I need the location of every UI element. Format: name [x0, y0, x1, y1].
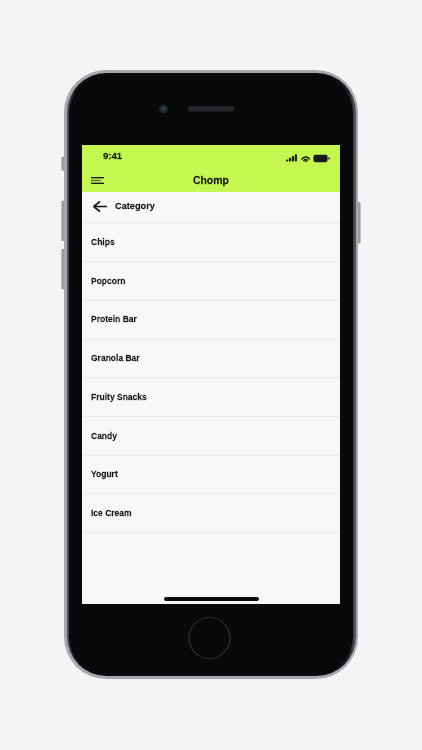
button[interactable]: Chips [82, 223, 340, 262]
staticText: Protein Bar [91, 314, 137, 323]
staticText: Ice Cream [91, 508, 132, 517]
button[interactable]: Ice Cream [82, 494, 340, 533]
button[interactable]: Fruity Snacks [82, 378, 340, 417]
button[interactable]: Yogurt [82, 455, 340, 494]
button[interactable]: Open navigation menu [84, 169, 110, 191]
button[interactable]: Protein Bar [82, 300, 340, 339]
staticText: 9:41 [103, 150, 123, 161]
button[interactable]: Category [82, 192, 340, 223]
staticText: Chomp [193, 175, 229, 187]
staticText: Fruity Snacks [91, 392, 147, 401]
staticText: Category [115, 201, 155, 211]
staticText: Popcorn [91, 276, 126, 285]
staticText: Candy [91, 431, 117, 440]
button[interactable]: Granola Bar [82, 339, 340, 378]
staticText: Granola Bar [91, 353, 140, 362]
staticText: Chips [91, 237, 115, 246]
button[interactable]: Popcorn [82, 262, 340, 301]
button[interactable]: Candy [82, 417, 340, 456]
staticText: Yogurt [91, 469, 118, 478]
